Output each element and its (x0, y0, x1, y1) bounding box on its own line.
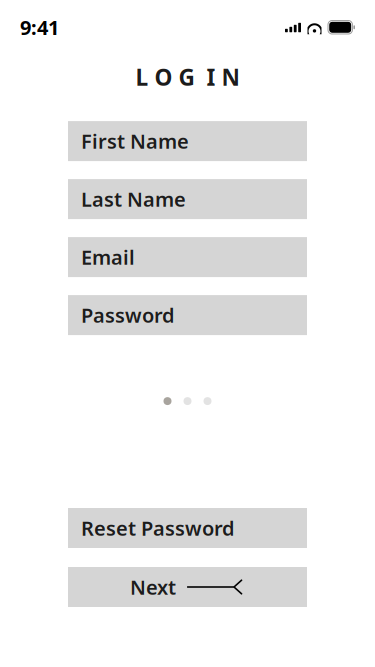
button[interactable]: Reset Password (68, 508, 307, 548)
staticText: 9:41 (20, 14, 59, 41)
button[interactable]: Last Name (68, 179, 307, 219)
staticText: First Name (81, 128, 189, 154)
button[interactable]: Next (68, 567, 307, 607)
staticText: Reset Password (81, 515, 235, 541)
button[interactable]: Password (68, 295, 307, 335)
button[interactable]: First Name (68, 121, 307, 161)
staticText: Last Name (81, 186, 186, 212)
staticText: Email (81, 244, 135, 270)
staticText: L O G I N (135, 62, 239, 92)
staticText: Password (81, 302, 175, 328)
button[interactable]: Email (68, 237, 307, 277)
staticText: Next (130, 574, 176, 600)
